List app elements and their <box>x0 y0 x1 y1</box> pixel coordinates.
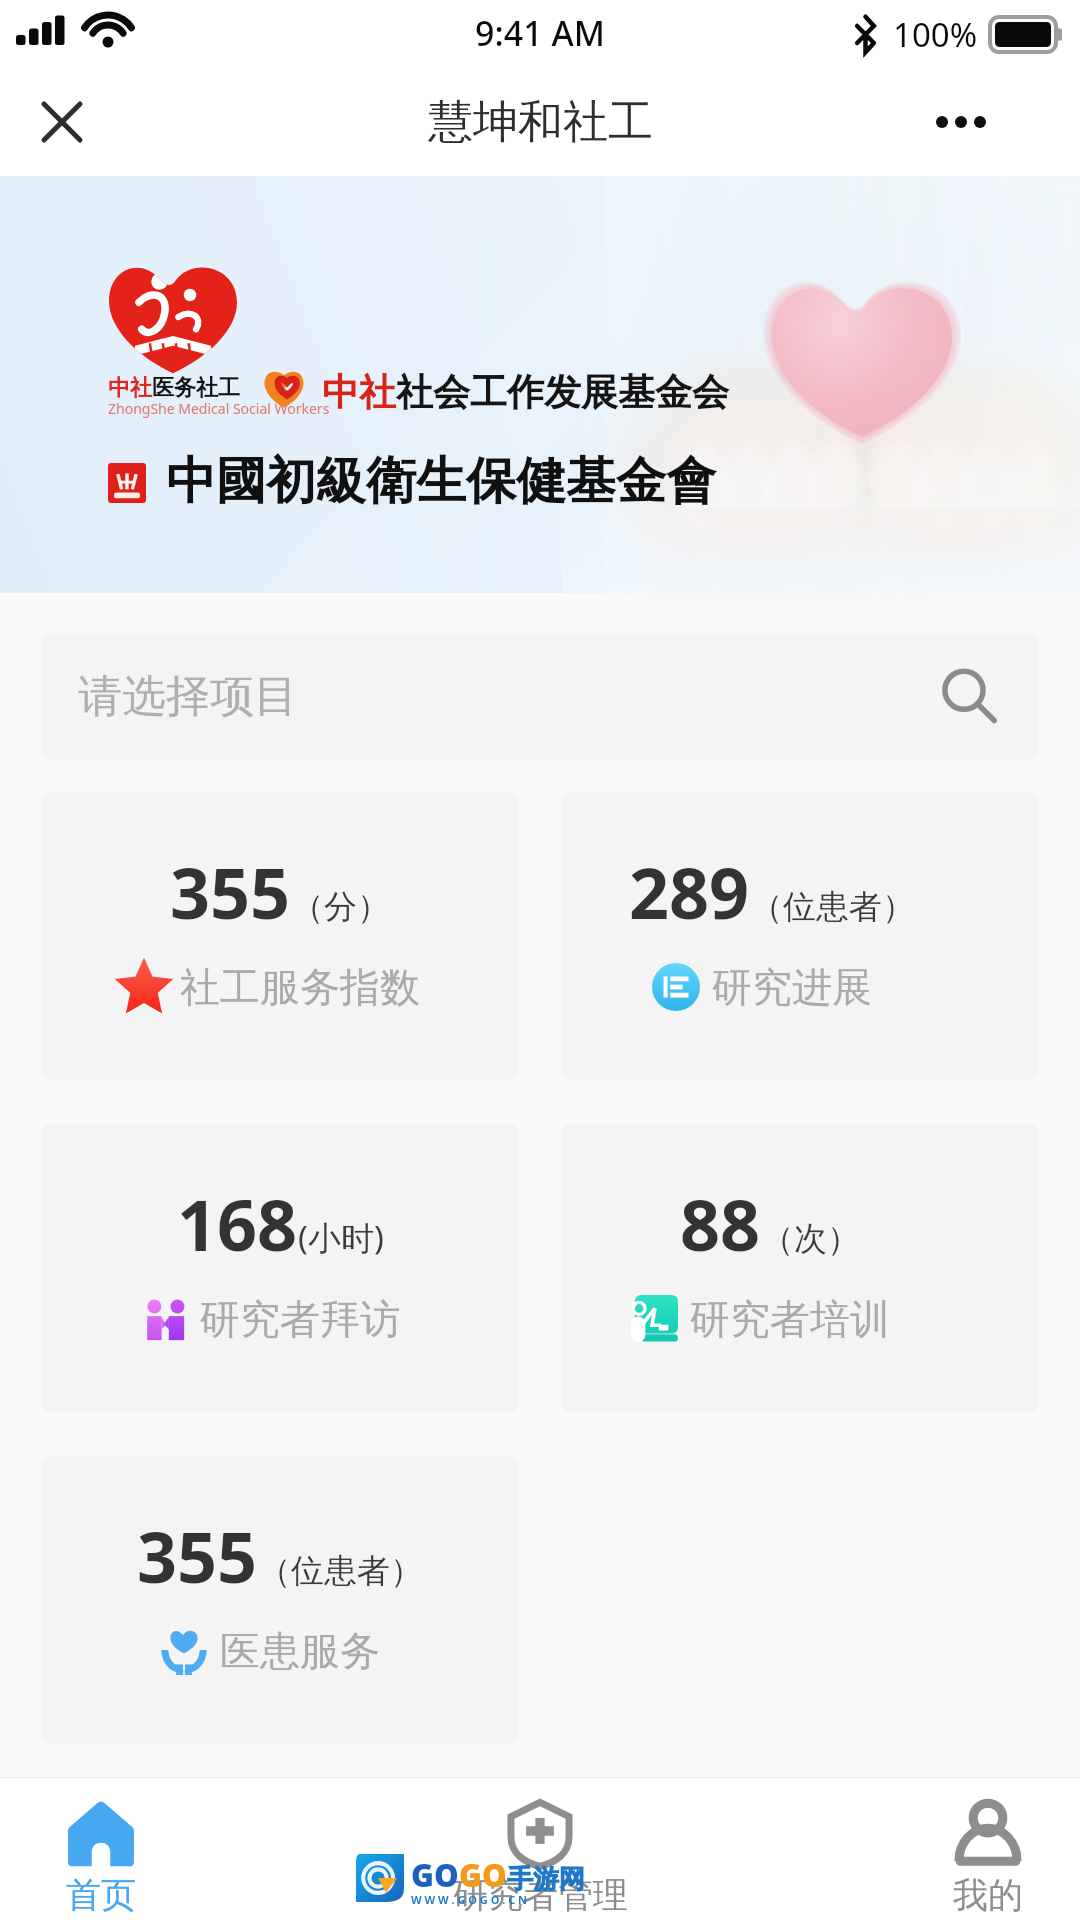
staticText: 355 <box>170 844 291 939</box>
staticText: 请选择项目 <box>78 669 298 724</box>
staticText: GO <box>411 1854 459 1896</box>
staticText: 168 <box>177 1176 298 1271</box>
staticText: （位患者） <box>750 886 915 928</box>
staticText: 中社 <box>108 374 152 402</box>
staticText: 首页 <box>66 1873 136 1917</box>
staticText: 9:41 AM <box>475 10 605 56</box>
button[interactable]: 355 <box>41 1456 519 1744</box>
staticText: (小时) <box>298 1215 384 1260</box>
staticText: 中國初級衛生保健基金會 <box>166 450 716 513</box>
button[interactable]: 请选择项目 <box>41 633 1039 760</box>
button[interactable]: 首页 <box>0 1777 221 1920</box>
staticText: ZhongShe Medical Social Workers <box>108 399 330 418</box>
staticText: 研究者管理 <box>453 1873 628 1917</box>
staticText: （位患者） <box>258 1550 423 1592</box>
staticText: 289 <box>629 844 750 939</box>
button[interactable]: More options <box>921 82 1001 162</box>
button[interactable]: Close <box>22 82 102 162</box>
staticText: 研究进展 <box>712 962 872 1012</box>
staticText: （分） <box>291 886 390 928</box>
button[interactable]: 355 <box>41 792 519 1080</box>
button[interactable]: 我的 <box>868 1777 1080 1920</box>
button[interactable]: 168 <box>41 1124 519 1412</box>
staticText: 355 <box>137 1508 258 1603</box>
button[interactable]: 289 <box>561 792 1039 1080</box>
staticText: W W W . G O G O . C N <box>411 1892 528 1907</box>
staticText: 社会工作发展基金会 <box>396 369 729 416</box>
staticText: 中社 <box>322 369 396 416</box>
staticText: 医务社工 <box>152 374 240 402</box>
staticText: 88 <box>680 1176 761 1271</box>
staticText: 研究者拜访 <box>200 1294 400 1344</box>
staticText: 100% <box>893 12 978 57</box>
staticText: 社工服务指数 <box>180 962 420 1012</box>
staticText: 研究者培训 <box>690 1294 890 1344</box>
button[interactable]: 88 <box>561 1124 1039 1412</box>
staticText: GO <box>459 1854 507 1896</box>
button[interactable]: 研究者管理 <box>420 1777 660 1920</box>
staticText: 慧坤和社工 <box>428 94 653 151</box>
staticText: 医患服务 <box>220 1626 380 1676</box>
staticText: （次） <box>761 1218 860 1260</box>
staticText: 我的 <box>953 1873 1023 1917</box>
staticText: 手游网 <box>507 1863 585 1896</box>
button[interactable]: 中社 <box>0 176 1080 593</box>
